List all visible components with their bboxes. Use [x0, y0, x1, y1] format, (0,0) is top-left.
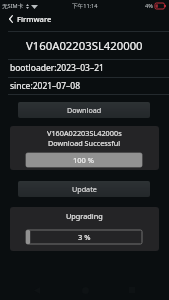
- staticText: 4%: [145, 2, 153, 10]
- staticText: Upgrading: [66, 211, 103, 221]
- staticText: 3 %: [78, 232, 91, 242]
- button[interactable]: Back: [0, 9, 169, 28]
- other: Back: [9, 15, 13, 23]
- staticText: since:2021–07–08: [10, 80, 81, 92]
- staticText: Update: [72, 184, 97, 194]
- staticText: 100 %: [73, 155, 95, 165]
- button[interactable]: V160A02203SL420000: [0, 31, 169, 59]
- staticText: 无SIM卡: [2, 2, 24, 10]
- staticText: V160A02203SL420000: [26, 38, 143, 53]
- staticText: bootloader:2023–03–21: [10, 62, 104, 74]
- button[interactable]: bootloader:2023–03–21: [0, 59, 169, 77]
- button[interactable]: Download: [18, 102, 150, 118]
- button[interactable]: since:2021–07–08: [0, 77, 169, 94]
- staticText: Firmware: [17, 14, 52, 24]
- staticText: 下午11:14: [72, 2, 98, 10]
- staticText: V160A02203SL42000s: [47, 128, 122, 138]
- staticText: Download: [67, 105, 102, 115]
- staticText: Download Successful: [48, 138, 121, 148]
- button[interactable]: Update: [18, 181, 150, 197]
